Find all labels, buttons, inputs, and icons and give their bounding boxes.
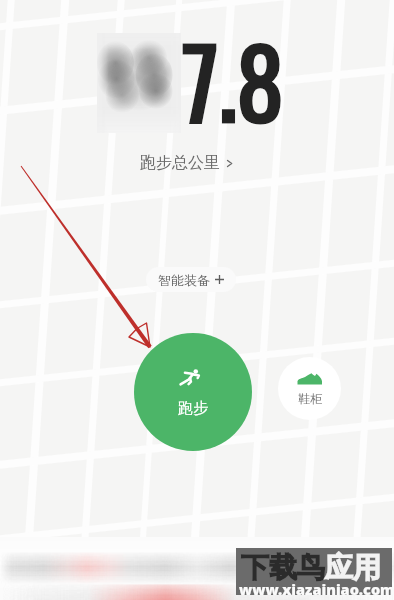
- button[interactable]: 跑步总公里: [140, 153, 235, 173]
- staticText: 智能装备: [158, 272, 210, 288]
- staticText: 鞋柜: [298, 391, 322, 406]
- button[interactable]: 鞋柜: [278, 357, 341, 420]
- staticText: www.xiazainiao.com: [239, 579, 394, 599]
- staticText: 跑步: [178, 399, 208, 418]
- button[interactable]: 跑步: [134, 333, 252, 451]
- staticText: 跑步总公里: [140, 153, 220, 173]
- staticText: 7.8: [182, 9, 284, 150]
- button[interactable]: 智能装备: [146, 267, 236, 292]
- staticText: 应用: [325, 550, 381, 585]
- staticText: 下载鸟: [241, 550, 325, 585]
